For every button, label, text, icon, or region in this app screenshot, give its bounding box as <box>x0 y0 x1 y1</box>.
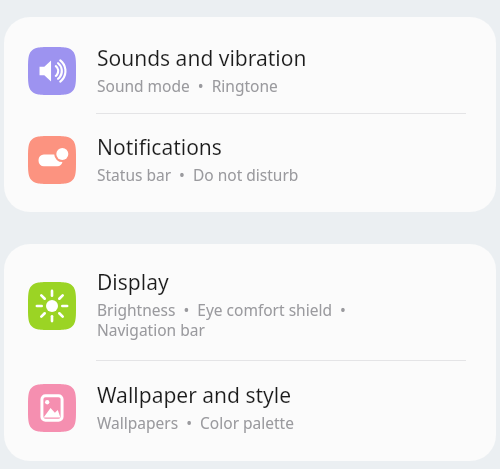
staticText: Sound mode • Ringtone <box>97 75 278 96</box>
staticText: Wallpapers • Color palette <box>97 412 294 433</box>
staticText: Display <box>97 268 169 297</box>
staticText: Sounds and vibration <box>97 44 307 73</box>
staticText: Wallpaper and style <box>97 381 292 410</box>
button[interactable]: Display <box>4 244 496 360</box>
staticText: Notifications <box>97 133 222 162</box>
staticText: Status bar • Do not disturb <box>97 164 299 185</box>
button[interactable]: Wallpaper and style <box>4 361 496 461</box>
button[interactable]: Sounds and vibration <box>4 17 496 113</box>
button[interactable]: Notifications <box>4 114 496 212</box>
staticText: Brightness • Eye comfort shield • Naviga… <box>97 299 346 341</box>
